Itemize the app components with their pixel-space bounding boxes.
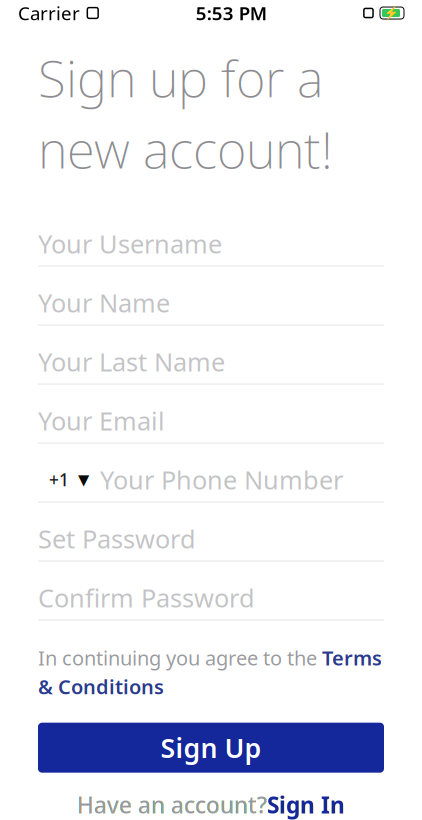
button[interactable]: Terms <box>322 645 382 671</box>
staticText: Sign Up <box>160 730 261 765</box>
staticText: Your Email <box>38 404 165 437</box>
button[interactable]: Have an account? <box>77 790 345 820</box>
staticText: Set Password <box>38 522 196 555</box>
button[interactable]: Your Email <box>38 392 384 451</box>
staticText: new account! <box>38 115 333 183</box>
button[interactable]: Your Name <box>38 274 384 333</box>
button[interactable]: +1 <box>38 458 100 502</box>
staticText: Your Name <box>38 286 170 319</box>
button[interactable]: Set Password <box>38 510 384 569</box>
staticText: Have an account? <box>77 790 267 820</box>
button[interactable]: Confirm Password <box>38 569 384 628</box>
staticText: Terms <box>322 645 382 671</box>
staticText: In continuing you agree to the <box>38 645 322 671</box>
button[interactable]: Sign Up <box>38 723 384 773</box>
staticText: ▼ <box>78 471 89 488</box>
button[interactable]: Your Username <box>38 215 384 274</box>
staticText: Your Last Name <box>38 345 225 378</box>
staticText: Your Phone Number <box>100 463 343 496</box>
staticText: ⚡ <box>384 6 399 20</box>
button[interactable]: & Conditions <box>38 673 164 700</box>
staticText: Sign up for a <box>38 44 323 111</box>
staticText: & Conditions <box>38 673 164 700</box>
staticText: Sign In <box>267 790 345 820</box>
staticText: Confirm Password <box>38 581 255 614</box>
button[interactable]: Your Last Name <box>38 333 384 392</box>
staticText: Your Username <box>38 227 222 260</box>
staticText: +1 <box>49 468 69 491</box>
